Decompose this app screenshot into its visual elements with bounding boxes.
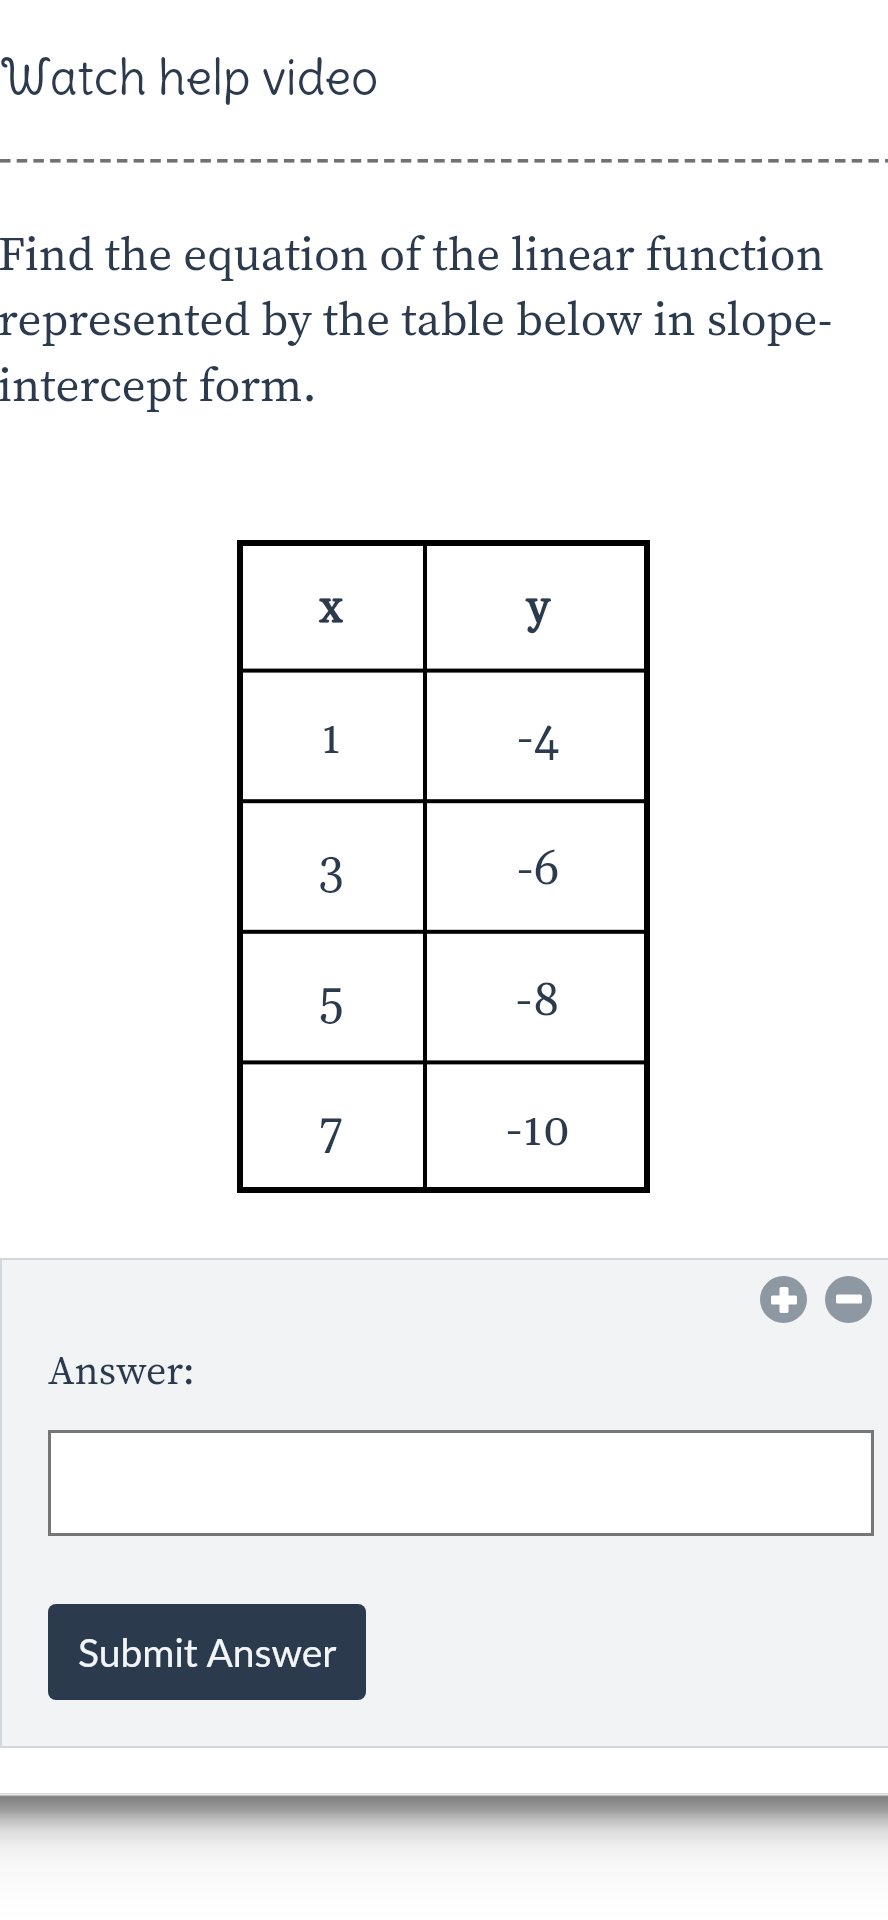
staticText: 3 [318, 841, 344, 899]
staticText: -10 [505, 1102, 571, 1160]
staticText: Answer: [48, 1343, 195, 1398]
staticText: -6 [516, 841, 560, 899]
button[interactable]: Zoom in [760, 1276, 807, 1323]
staticText: Submit Answer [78, 1629, 337, 1676]
staticText: Find the equation of the linear function… [0, 221, 886, 417]
staticText: -4 [516, 710, 560, 768]
staticText: 1 [321, 710, 341, 768]
staticText: Watch help video [0, 46, 379, 107]
staticText: 7 [319, 1102, 343, 1160]
button[interactable]: Watch help video [0, 0, 888, 131]
staticText: y [526, 578, 550, 638]
button[interactable]: Zoom out [825, 1276, 872, 1323]
staticText: 5 [319, 972, 344, 1030]
staticText: x [319, 578, 343, 638]
button[interactable]: Submit Answer [48, 1604, 366, 1700]
staticText: -8 [515, 972, 560, 1030]
